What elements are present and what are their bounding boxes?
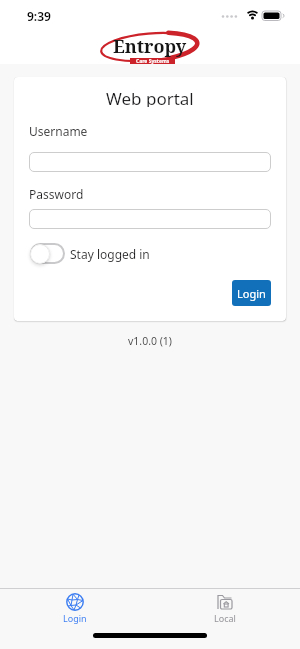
staticText: Entropy xyxy=(113,34,187,59)
button[interactable]: Login xyxy=(232,280,271,306)
staticText: Stay logged in xyxy=(70,246,150,262)
staticText: Password xyxy=(29,186,84,202)
button[interactable] xyxy=(29,152,271,172)
staticText: Login xyxy=(237,286,266,301)
staticText: Login xyxy=(63,612,87,624)
staticText: v1.0.0 (1) xyxy=(128,334,173,348)
button[interactable]: Local xyxy=(150,588,300,649)
staticText: Local xyxy=(214,612,236,624)
staticText: Care Systems xyxy=(136,58,170,65)
staticText: 9:39 xyxy=(27,8,51,24)
button[interactable]: Stay logged in xyxy=(29,243,150,264)
staticText: Web portal xyxy=(106,87,194,107)
staticText: Username xyxy=(29,123,88,139)
button[interactable]: Login xyxy=(0,588,150,649)
button[interactable] xyxy=(29,209,271,229)
